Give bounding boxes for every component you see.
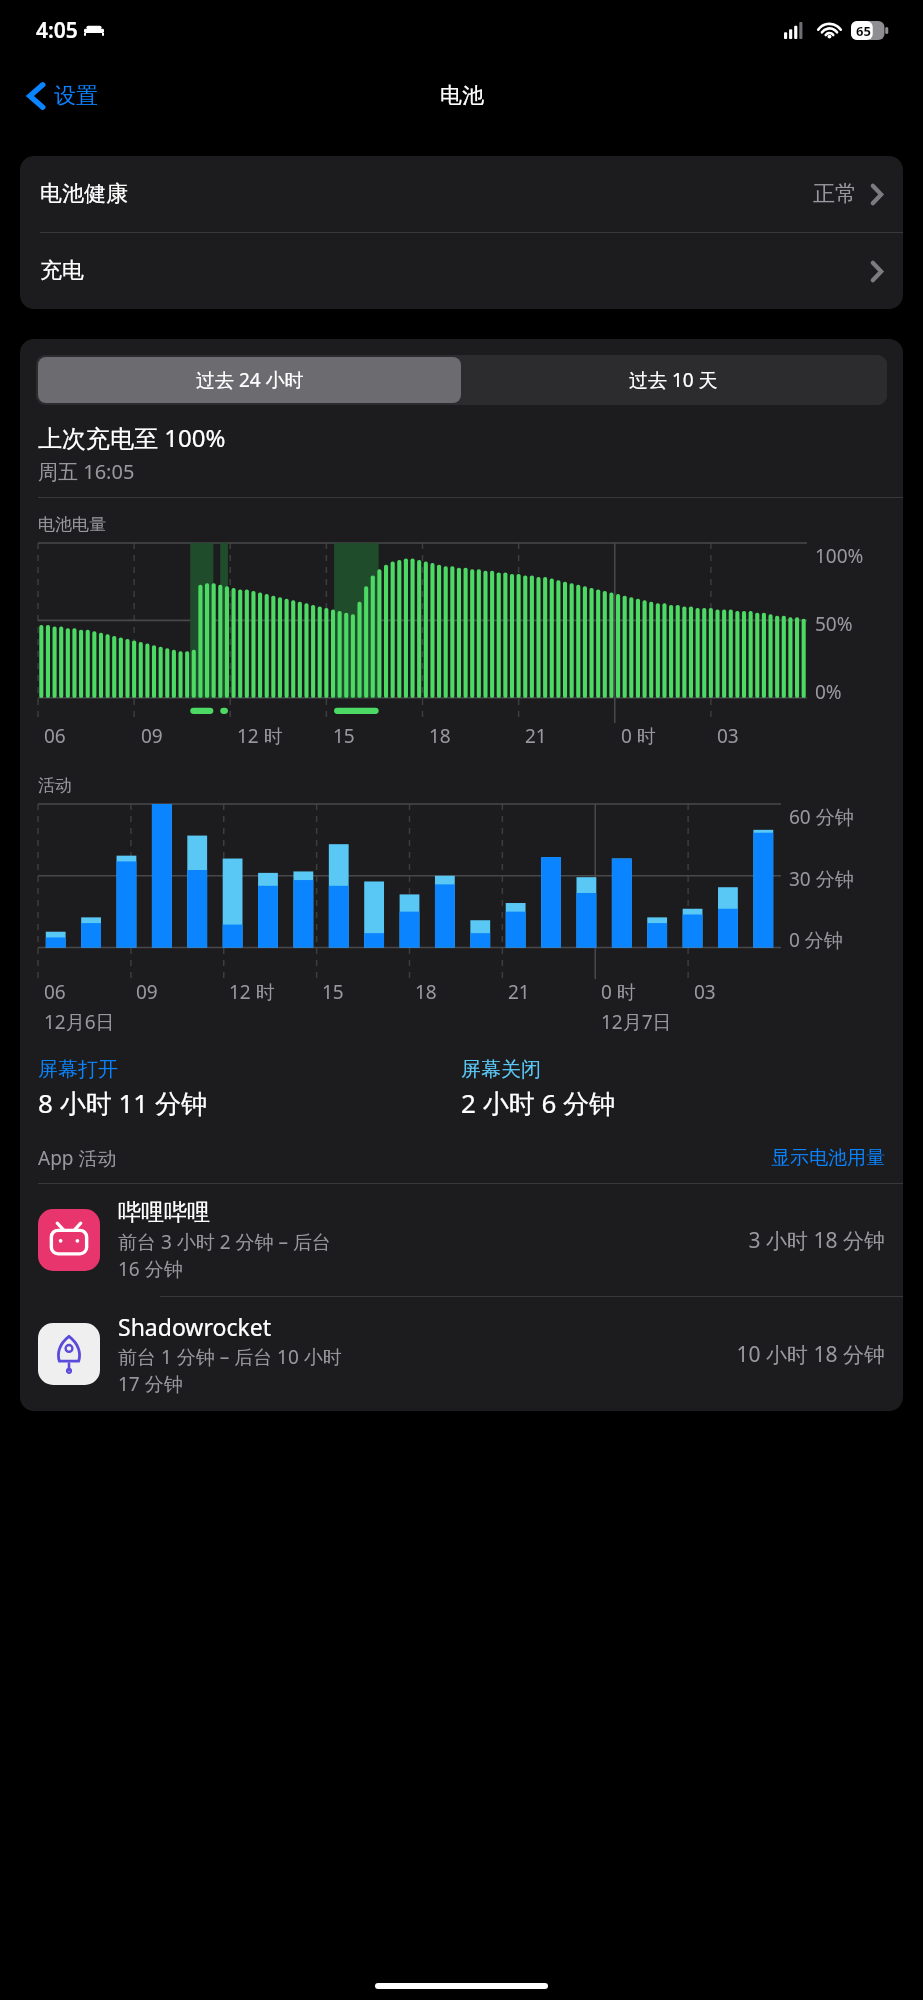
staticText: 12月6日 [44, 1009, 115, 1035]
button[interactable]: 电池健康 [20, 156, 903, 232]
staticText: 18 [429, 723, 451, 749]
staticText: 8 小时 11 分钟 [38, 1085, 207, 1121]
staticText: 50% [815, 611, 853, 637]
staticText: 上次充电至 100% [38, 421, 226, 454]
staticText: Shadowrocket [118, 1311, 271, 1342]
staticText: 活动 [38, 775, 72, 796]
staticText: 30 分钟 [789, 866, 854, 892]
staticText: 电池电量 [38, 514, 106, 535]
staticText: 3 小时 18 分钟 [748, 1226, 885, 1255]
staticText: 21 [525, 723, 547, 749]
staticText: 充电 [40, 257, 84, 285]
button[interactable]: 哔哩哔哩 [20, 1184, 903, 1296]
staticText: App 活动 [38, 1145, 117, 1171]
staticText: 0 时 [621, 723, 656, 749]
staticText: 显示电池用量 [771, 1146, 885, 1170]
button[interactable]: Shadowrocket [20, 1297, 903, 1411]
staticText: 周五 16:05 [38, 458, 135, 485]
staticText: 正常 [813, 180, 857, 208]
staticText: 屏幕关闭 [461, 1057, 541, 1082]
staticText: 前台 1 分钟 – 后台 10 小时 17 分钟 [118, 1344, 342, 1397]
staticText: 设置 [54, 82, 98, 110]
staticText: 12 时 [237, 723, 283, 749]
staticText: 03 [717, 723, 739, 749]
staticText: 电池 [440, 82, 484, 110]
staticText: 18 [415, 979, 437, 1005]
button[interactable]: 过去 10 天 [461, 357, 885, 403]
staticText: 4:05 [36, 16, 78, 45]
staticText: 12 时 [229, 979, 275, 1005]
staticText: 过去 10 天 [629, 367, 718, 393]
staticText: 15 [322, 979, 344, 1005]
staticText: 09 [136, 979, 158, 1005]
staticText: 前台 3 小时 2 分钟 – 后台 16 分钟 [118, 1229, 331, 1282]
staticText: 0% [815, 679, 842, 705]
staticText: 10 小时 18 分钟 [736, 1340, 885, 1369]
button[interactable]: 过去 24 小时 [38, 357, 461, 403]
button[interactable]: 设置 [22, 76, 104, 116]
staticText: 60 分钟 [789, 804, 854, 830]
staticText: 15 [333, 723, 355, 749]
staticText: 06 [44, 979, 66, 1005]
staticText: 哔哩哔哩 [118, 1198, 210, 1227]
staticText: 0 分钟 [789, 927, 843, 953]
button[interactable]: 充电 [20, 233, 903, 309]
staticText: 0 时 [601, 979, 636, 1005]
staticText: 65 [856, 22, 871, 40]
staticText: 03 [694, 979, 716, 1005]
staticText: 2 小时 6 分钟 [461, 1085, 616, 1121]
staticText: 100% [815, 543, 864, 569]
staticText: 21 [508, 979, 530, 1005]
staticText: 屏幕打开 [38, 1057, 118, 1082]
staticText: 12月7日 [601, 1009, 672, 1035]
button[interactable]: 显示电池用量 [771, 1146, 885, 1170]
staticText: 09 [141, 723, 163, 749]
staticText: 电池健康 [40, 180, 128, 208]
staticText: 06 [44, 723, 66, 749]
staticText: 过去 24 小时 [196, 367, 304, 393]
